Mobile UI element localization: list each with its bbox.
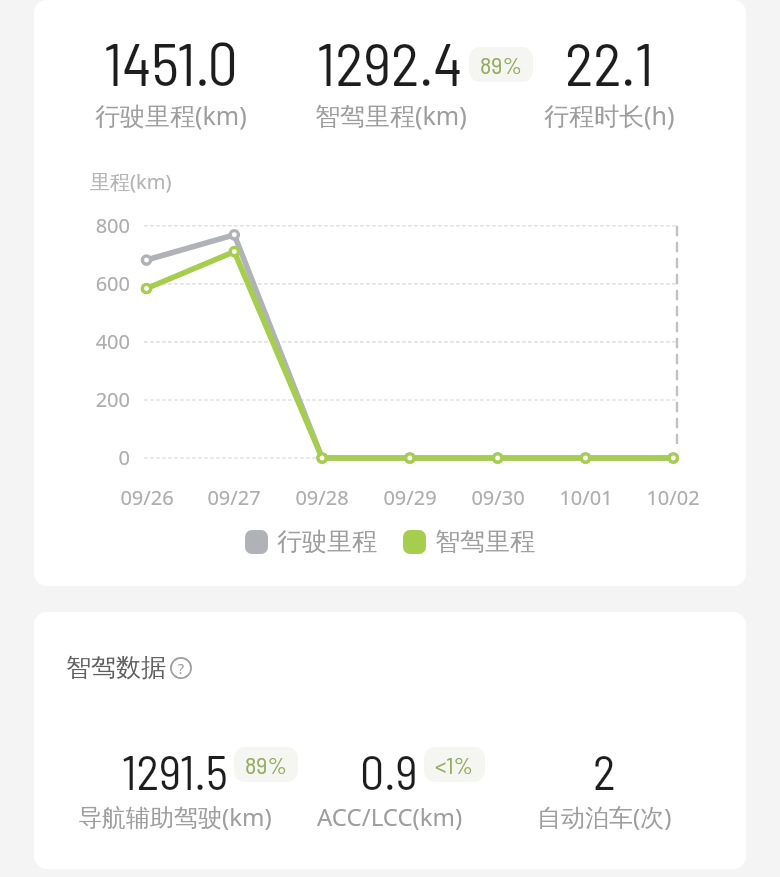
staticText: 89%	[245, 750, 287, 779]
staticText: 智驾数据	[66, 652, 166, 683]
button[interactable]: 0.9	[282, 742, 497, 833]
button[interactable]: 1292.4	[281, 26, 500, 132]
staticText: 200	[34, 386, 130, 413]
staticText: 09/30	[453, 484, 543, 511]
staticText: 800	[34, 212, 130, 239]
staticText: 自动泊车(次)	[537, 800, 672, 833]
staticText: 09/28	[277, 484, 367, 511]
staticText: 09/26	[102, 484, 192, 511]
button[interactable]: 智驾里程	[403, 526, 535, 557]
staticText: 400	[34, 328, 130, 355]
staticText: 09/29	[365, 484, 455, 511]
staticText: 1292.4	[317, 26, 463, 98]
staticText: 600	[34, 270, 130, 297]
staticText: 1291.5	[122, 742, 228, 800]
staticText: ACC/LCC(km)	[317, 800, 463, 833]
staticText: 智驾里程(km)	[315, 98, 467, 132]
staticText: <1%	[435, 750, 474, 779]
staticText: 89%	[480, 50, 522, 79]
staticText: 导航辅助驾驶(km)	[78, 800, 272, 833]
other: About smart-driving data	[170, 657, 192, 679]
staticText: 行驶里程(km)	[95, 98, 247, 132]
staticText: 1451.0	[104, 26, 238, 98]
staticText: ?	[178, 659, 185, 678]
staticText: 09/27	[189, 484, 279, 511]
button[interactable]: 2	[497, 742, 712, 833]
staticText: 0.9	[360, 742, 418, 800]
button[interactable]: 1451.0	[61, 26, 281, 132]
button[interactable]: 行驶里程	[245, 526, 377, 557]
staticText: 行程时长(h)	[544, 98, 675, 132]
staticText: 行驶里程	[277, 526, 377, 557]
staticText: 22.1	[565, 26, 654, 98]
staticText: 里程(km)	[90, 168, 172, 195]
staticText: 2	[593, 742, 616, 800]
staticText: 10/01	[541, 484, 631, 511]
button[interactable]: 智驾数据	[66, 652, 192, 683]
button[interactable]: 22.1	[500, 26, 719, 132]
staticText: 0	[34, 444, 130, 471]
staticText: 智驾里程	[435, 526, 535, 557]
staticText: 10/02	[628, 484, 718, 511]
button[interactable]: 1291.5	[68, 742, 282, 833]
